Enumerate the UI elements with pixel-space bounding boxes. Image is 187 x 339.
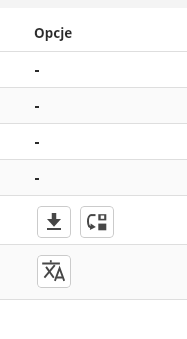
staticText: Opcje — [34, 24, 73, 42]
button[interactable] — [0, 52, 187, 88]
button[interactable] — [0, 88, 187, 124]
button[interactable] — [0, 124, 187, 160]
button[interactable] — [0, 160, 187, 196]
button[interactable]: Translate — [37, 255, 71, 288]
button[interactable]: Download — [37, 206, 71, 238]
button[interactable]: Move to folder — [80, 206, 114, 238]
